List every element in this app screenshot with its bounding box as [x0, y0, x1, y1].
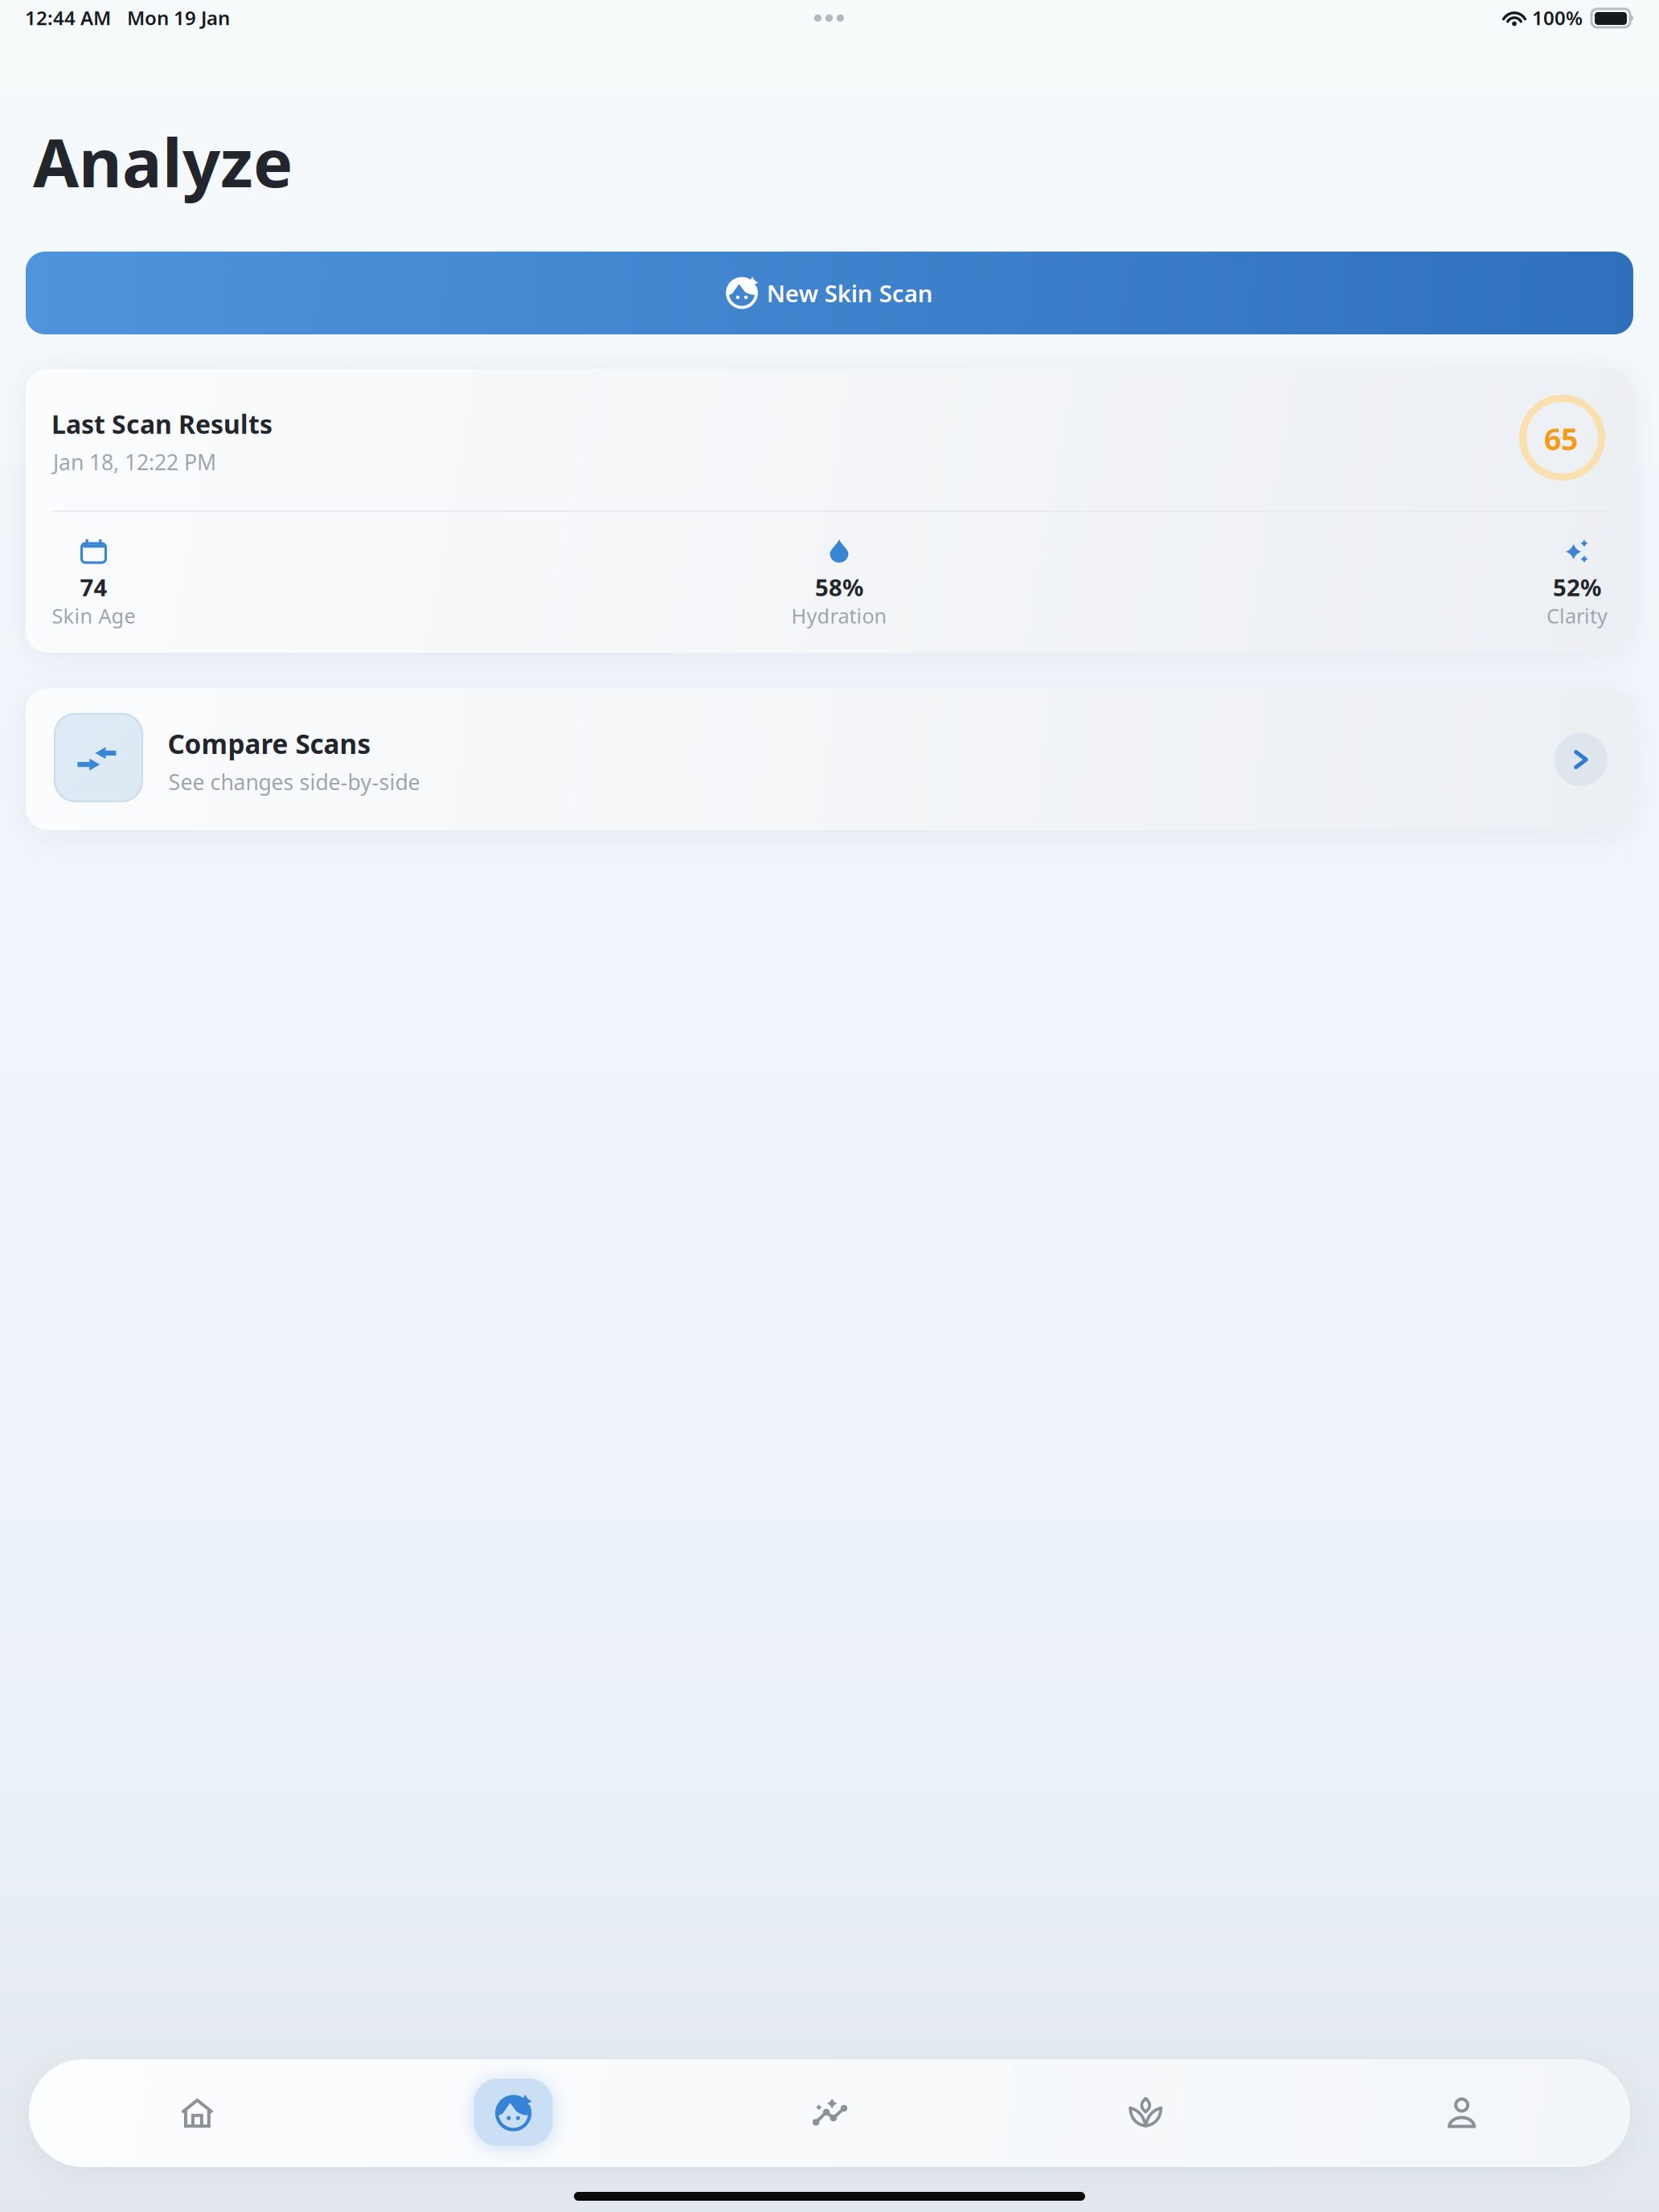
- staticText: Compare Scans: [168, 726, 371, 761]
- staticText: 65: [1544, 419, 1578, 459]
- staticText: See changes side-by-side: [168, 768, 420, 796]
- staticText: Analyze: [33, 117, 293, 206]
- staticText: 74: [80, 571, 107, 603]
- staticText: Last Scan Results: [51, 407, 272, 441]
- staticText: 12:44 AM: [25, 5, 111, 30]
- button[interactable]: New Skin Scan: [26, 252, 1633, 334]
- staticText: Mon 19 Jan: [127, 5, 230, 30]
- staticText: 52%: [1553, 571, 1601, 603]
- staticText: 58%: [815, 571, 863, 603]
- staticText: Skin Age: [52, 602, 135, 629]
- button[interactable]: Routine: [988, 2059, 1304, 2167]
- staticText: Clarity: [1546, 602, 1608, 629]
- button[interactable]: Compare Scans: [26, 688, 1633, 830]
- staticText: Hydration: [791, 602, 887, 629]
- staticText: Jan 18, 12:22 PM: [53, 448, 216, 476]
- button[interactable]: Trends: [671, 2059, 988, 2167]
- button[interactable]: Skin scan: [355, 2059, 671, 2167]
- staticText: 100%: [1532, 5, 1583, 30]
- staticText: New Skin Scan: [767, 277, 933, 309]
- button[interactable]: Profile: [1304, 2059, 1620, 2167]
- button[interactable]: Home: [39, 2059, 355, 2167]
